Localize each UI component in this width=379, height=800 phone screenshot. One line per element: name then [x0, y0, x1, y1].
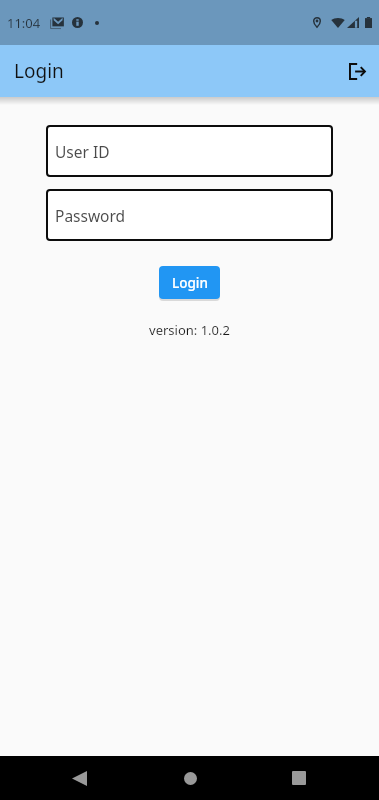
staticText: User ID	[55, 141, 110, 162]
button[interactable]: User ID	[46, 125, 333, 177]
staticText: Login	[172, 274, 208, 292]
button[interactable]: Home	[166, 756, 214, 800]
button[interactable]: Recents	[275, 756, 323, 800]
button[interactable]: Logout	[337, 51, 377, 91]
staticText: Password	[55, 205, 126, 226]
staticText: 11:04	[7, 14, 41, 32]
button[interactable]: Back	[55, 756, 103, 800]
button[interactable]: Login	[159, 266, 220, 299]
button[interactable]: Password	[46, 189, 333, 241]
staticText: Login	[14, 58, 64, 84]
staticText: version: 1.0.2	[149, 321, 230, 339]
